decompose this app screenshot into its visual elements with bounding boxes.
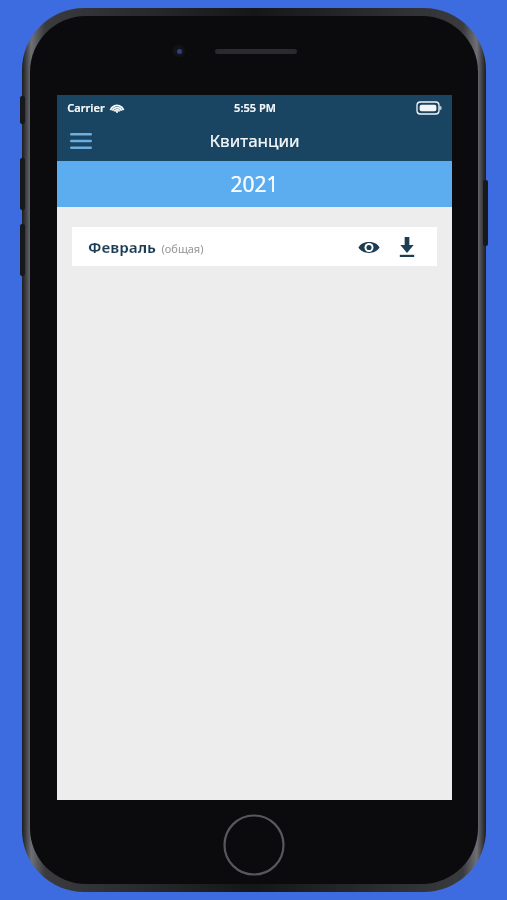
other: Home <box>223 814 285 876</box>
staticText: 2021 <box>230 170 279 199</box>
button[interactable]: 2021 <box>57 161 452 207</box>
button[interactable]: Open navigation menu <box>57 120 105 161</box>
staticText: (общая) <box>161 241 204 256</box>
staticText: 5:55 PM <box>234 100 276 115</box>
button[interactable]: Февраль <box>72 227 437 266</box>
staticText: Квитанции <box>209 129 300 152</box>
button[interactable]: Download receipt <box>391 231 423 263</box>
staticText: Carrier <box>67 100 105 115</box>
staticText: Февраль <box>88 237 156 257</box>
button[interactable]: View receipt <box>353 231 385 263</box>
